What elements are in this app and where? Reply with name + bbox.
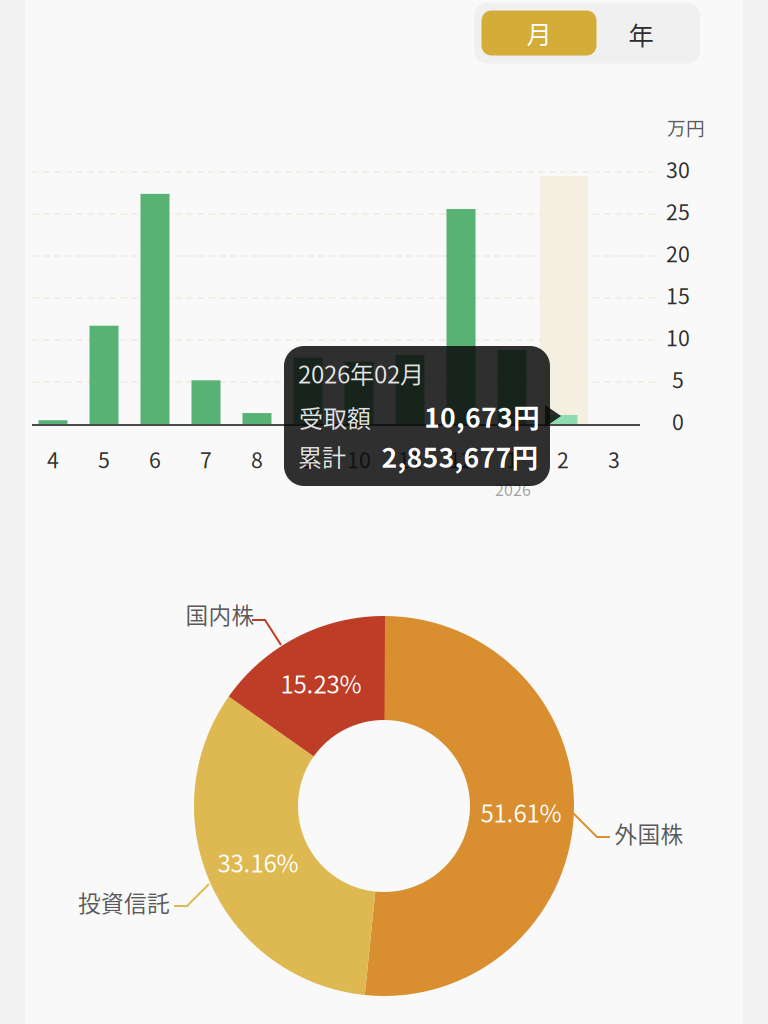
staticText: 年 bbox=[628, 16, 653, 52]
staticText: 国内株 bbox=[185, 598, 254, 630]
staticText: 12 bbox=[449, 444, 473, 474]
staticText: 0 bbox=[672, 406, 684, 436]
staticText: 10,673円 bbox=[424, 397, 540, 435]
staticText: 投資信託 bbox=[78, 886, 170, 918]
staticText: 10 bbox=[347, 444, 371, 474]
staticText: 受取額 bbox=[299, 400, 371, 434]
staticText: 11 bbox=[398, 444, 422, 474]
button[interactable]: 年 bbox=[593, 11, 689, 56]
staticText: 51.61% bbox=[480, 795, 561, 829]
staticText: 外国株 bbox=[614, 817, 683, 849]
staticText: 30 bbox=[666, 154, 690, 184]
staticText: 7 bbox=[200, 444, 212, 474]
button[interactable]: 月 bbox=[481, 10, 596, 55]
staticText: 33.16% bbox=[217, 845, 298, 879]
staticText: 8 bbox=[251, 444, 263, 474]
staticText: 万円 bbox=[667, 113, 705, 140]
staticText: 25 bbox=[666, 196, 690, 226]
staticText: 2026年02月 bbox=[298, 356, 424, 390]
staticText: 5 bbox=[98, 444, 110, 474]
staticText: 6 bbox=[149, 444, 161, 474]
staticText: 月 bbox=[526, 15, 551, 51]
staticText: 15 bbox=[666, 280, 690, 310]
staticText: 5 bbox=[672, 364, 684, 394]
staticText: 10 bbox=[666, 322, 690, 352]
staticText: 4 bbox=[47, 444, 59, 474]
staticText: 15.23% bbox=[280, 666, 361, 700]
staticText: 2,853,677円 bbox=[381, 437, 538, 475]
staticText: 1 bbox=[506, 444, 518, 474]
staticText: 20 bbox=[666, 238, 690, 268]
staticText: 3 bbox=[608, 444, 620, 474]
staticText: 2026 bbox=[495, 477, 531, 501]
staticText: 2 bbox=[557, 444, 569, 474]
staticText: 9 bbox=[302, 444, 314, 474]
staticText: 累計 bbox=[298, 439, 346, 473]
